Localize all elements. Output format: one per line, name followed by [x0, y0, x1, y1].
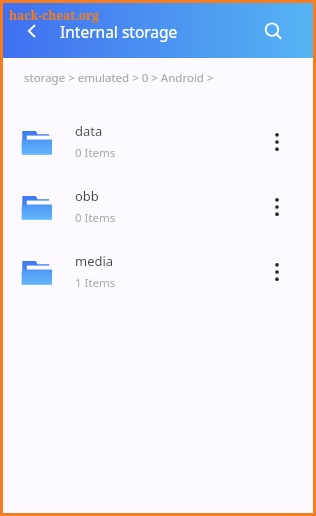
staticText: hack-cheat.org: [9, 7, 100, 23]
button[interactable]: More options for obb: [257, 187, 297, 227]
button[interactable]: Search: [254, 12, 292, 50]
staticText: 1 Items: [75, 275, 116, 291]
button[interactable]: More options for media: [257, 252, 297, 292]
staticText: data: [75, 122, 103, 140]
button[interactable]: Back: [14, 13, 50, 49]
staticText: storage > emulated > 0 > Android >: [24, 70, 214, 86]
button[interactable]: media: [3, 239, 313, 304]
button[interactable]: data: [3, 109, 313, 174]
staticText: media: [75, 252, 114, 270]
staticText: Internal storage: [60, 21, 178, 42]
button[interactable]: obb: [3, 174, 313, 239]
button[interactable]: More options for data: [257, 122, 297, 162]
staticText: obb: [75, 187, 99, 205]
staticText: 0 Items: [75, 145, 116, 161]
staticText: 0 Items: [75, 210, 116, 226]
